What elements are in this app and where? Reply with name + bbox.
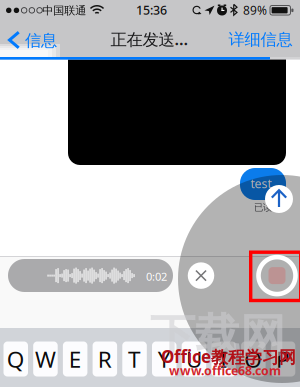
staticText: T (128, 344, 141, 374)
button[interactable]: Y (152, 341, 176, 376)
button[interactable]: T (122, 341, 147, 376)
button[interactable]: U (182, 341, 206, 376)
button[interactable]: Stop recording (258, 257, 295, 294)
staticText: I (220, 344, 228, 374)
staticText: 89% (243, 2, 267, 18)
staticText: W (35, 344, 56, 374)
staticText: 0:02 (146, 269, 167, 284)
staticText: 正在发送… (110, 28, 188, 50)
staticText: 已读 (254, 202, 272, 213)
staticText: P (276, 344, 290, 374)
staticText: O (244, 344, 262, 374)
button[interactable]: P (271, 341, 295, 376)
staticText: test (250, 175, 271, 192)
button[interactable]: R (93, 341, 117, 376)
staticText: www.office68.com (169, 362, 281, 379)
staticText: Q (7, 344, 25, 374)
button[interactable]: I (211, 341, 236, 376)
button[interactable]: O (241, 341, 266, 376)
staticText: 15:36 (136, 2, 167, 18)
button[interactable]: 详细信息 (219, 21, 300, 57)
staticText: 中国联通 (42, 3, 86, 17)
button[interactable]: Cancel recording (188, 262, 214, 289)
staticText: 下载网 (150, 307, 285, 364)
button[interactable]: Q (3, 341, 28, 376)
button[interactable]: E (63, 341, 87, 376)
staticText: 信息 (25, 30, 57, 51)
button[interactable]: 信息 (0, 22, 62, 58)
button[interactable]: W (33, 341, 58, 376)
staticText: R (98, 344, 112, 374)
staticText: U (186, 344, 202, 374)
staticText: Y (158, 344, 171, 374)
staticText: 详细信息 (229, 29, 293, 50)
staticText: Office教程学习网 (161, 345, 296, 368)
staticText: E (69, 344, 82, 374)
button[interactable]: Send (265, 185, 293, 213)
